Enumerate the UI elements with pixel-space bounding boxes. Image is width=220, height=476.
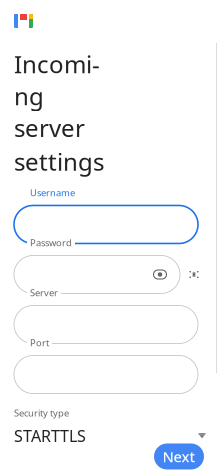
button[interactable]: Clear password xyxy=(182,262,206,286)
staticText: Password xyxy=(30,236,72,249)
button[interactable]: Password xyxy=(14,255,180,293)
staticText: Server xyxy=(30,286,58,299)
button[interactable]: Server xyxy=(14,305,198,343)
staticText: Username xyxy=(30,186,75,199)
staticText: Security type xyxy=(14,407,69,419)
staticText: settings xyxy=(14,146,104,177)
button[interactable]: Port xyxy=(14,355,198,393)
button[interactable]: Security type xyxy=(0,409,220,443)
staticText: Incoming server xyxy=(14,48,100,144)
staticText: STARTTLS xyxy=(14,425,86,446)
button[interactable]: Username xyxy=(14,205,198,243)
button[interactable]: Next xyxy=(154,443,204,469)
staticText: Port xyxy=(30,336,49,349)
staticText: Next xyxy=(162,447,195,466)
